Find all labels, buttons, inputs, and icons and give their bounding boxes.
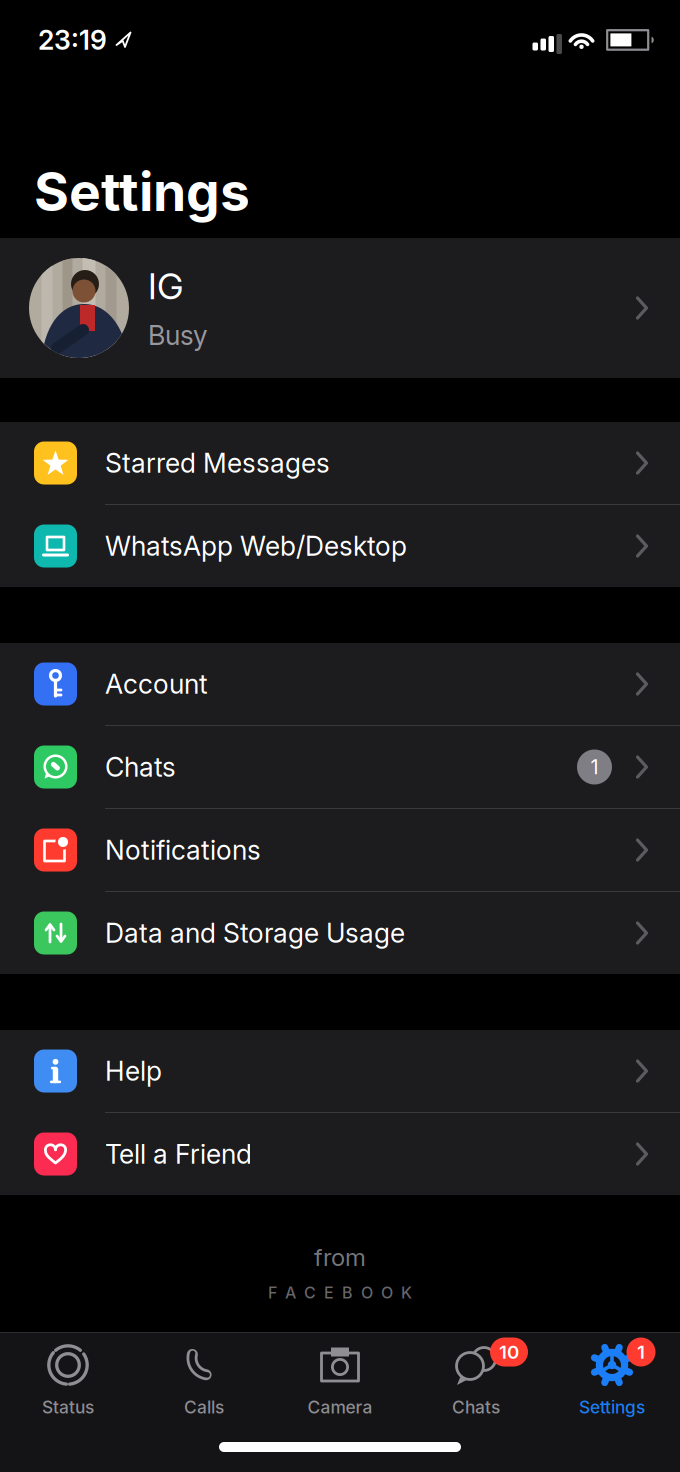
button[interactable]: Chats xyxy=(0,726,680,808)
staticText: Settings xyxy=(579,1397,645,1417)
staticText: O xyxy=(361,1283,373,1302)
staticText: Busy xyxy=(148,319,208,351)
staticText: Account xyxy=(105,668,208,700)
button[interactable]: Notifications xyxy=(0,809,680,891)
button[interactable]: WhatsApp Web/Desktop xyxy=(0,505,680,587)
staticText: Settings xyxy=(34,160,250,223)
staticText: O xyxy=(381,1283,393,1302)
staticText: Status xyxy=(42,1397,94,1417)
button[interactable]: Calls xyxy=(136,1343,272,1417)
button[interactable]: Starred Messages xyxy=(0,422,680,504)
staticText: C xyxy=(304,1283,316,1302)
staticText: from xyxy=(314,1243,366,1271)
staticText: 23:19 xyxy=(38,24,107,56)
staticText: Starred Messages xyxy=(105,447,330,479)
button[interactable]: Camera xyxy=(272,1343,408,1417)
staticText: Tell a Friend xyxy=(105,1138,252,1170)
staticText: B xyxy=(342,1283,353,1302)
staticText: Chats xyxy=(452,1397,500,1417)
staticText: Data and Storage Usage xyxy=(105,917,405,949)
staticText: Calls xyxy=(184,1397,224,1417)
button[interactable]: 1 xyxy=(544,1343,680,1417)
button[interactable]: Account xyxy=(0,643,680,725)
staticText: Camera xyxy=(307,1397,372,1417)
button[interactable]: Status xyxy=(0,1343,136,1417)
staticText: E xyxy=(324,1283,334,1302)
button[interactable]: IG xyxy=(0,238,680,378)
button[interactable]: Data and Storage Usage xyxy=(0,892,680,974)
button[interactable]: 10 xyxy=(408,1343,544,1417)
staticText: 1 xyxy=(637,1341,645,1363)
staticText: Chats xyxy=(105,751,176,783)
staticText: 10 xyxy=(499,1341,519,1363)
staticText: F xyxy=(268,1283,277,1302)
button[interactable]: Help xyxy=(0,1030,680,1112)
staticText: A xyxy=(285,1283,296,1302)
staticText: K xyxy=(401,1283,412,1302)
staticText: Notifications xyxy=(105,834,261,866)
staticText: 1 xyxy=(590,755,598,779)
staticText: Help xyxy=(105,1055,162,1087)
staticText: IG xyxy=(148,265,183,307)
staticText: WhatsApp Web/Desktop xyxy=(105,530,407,562)
button[interactable]: Tell a Friend xyxy=(0,1113,680,1195)
